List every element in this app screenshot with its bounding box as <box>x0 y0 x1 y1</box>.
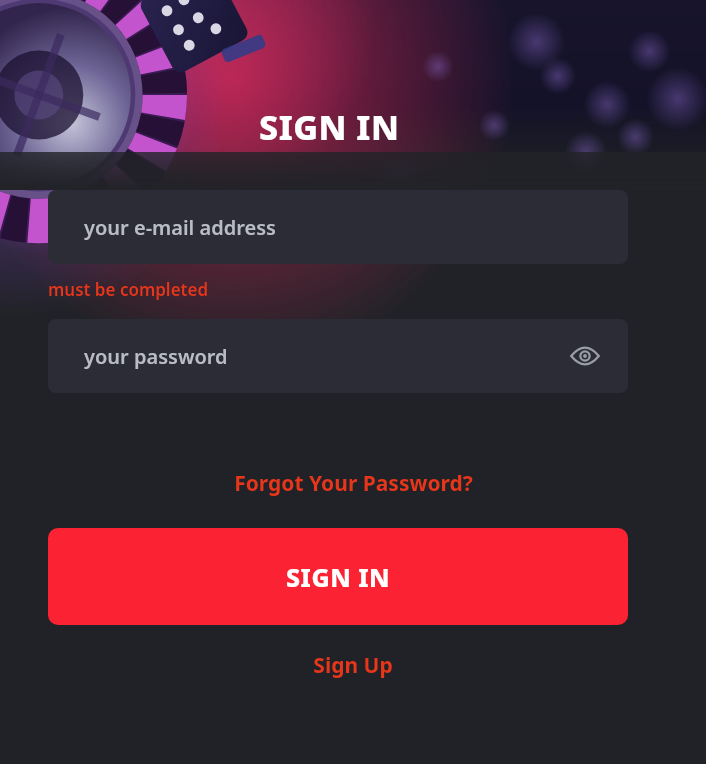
staticText: SIGN IN <box>286 560 391 594</box>
staticText: must be completed <box>48 278 209 301</box>
button[interactable]: your e-mail address <box>48 190 628 264</box>
button[interactable]: your password <box>48 319 628 393</box>
staticText: SIGN IN <box>259 104 400 150</box>
button[interactable]: Sign Up <box>0 651 706 680</box>
button[interactable]: Forgot Your Password? <box>0 469 706 498</box>
staticText: Sign Up <box>313 651 393 680</box>
staticText: your password <box>84 343 228 370</box>
staticText: Forgot Your Password? <box>234 469 473 498</box>
button[interactable]: SIGN IN <box>48 528 628 625</box>
button[interactable]: Show password <box>568 339 602 373</box>
staticText: your e-mail address <box>84 214 276 241</box>
